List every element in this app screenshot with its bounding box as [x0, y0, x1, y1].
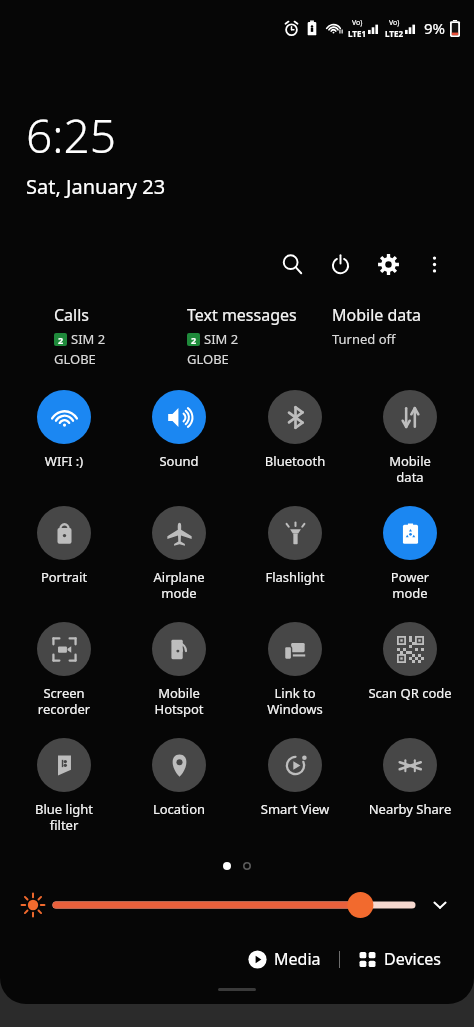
staticText: Sound: [127, 452, 231, 470]
staticText: Flashlight: [243, 568, 347, 586]
staticText: SIM 2: [204, 330, 239, 348]
staticText: Bluetooth: [243, 452, 347, 470]
staticText: Nearby Share: [358, 800, 462, 818]
staticText: Media: [274, 948, 321, 970]
button[interactable]: Text messages: [187, 304, 332, 368]
staticText: GLOBE: [187, 350, 229, 368]
button[interactable]: Mobile data: [332, 304, 464, 348]
button[interactable]: Search: [272, 244, 312, 284]
staticText: WIFI :): [12, 452, 116, 470]
button[interactable]: Portrait: [12, 506, 116, 586]
staticText: LTE2: [385, 28, 403, 39]
staticText: GLOBE: [54, 350, 96, 368]
button[interactable]: More options: [414, 244, 454, 284]
button[interactable]: Expand brightness settings: [420, 885, 460, 925]
staticText: 6:25: [26, 104, 117, 167]
staticText: Mobile Hotspot: [127, 684, 231, 717]
button[interactable]: Blue light filter: [12, 738, 116, 833]
button[interactable]: Devices: [352, 942, 448, 976]
button[interactable]: Power: [320, 244, 360, 284]
button[interactable]: Sound: [127, 390, 231, 470]
button[interactable]: Flashlight: [243, 506, 347, 586]
button[interactable]: Nearby Share: [358, 738, 462, 818]
staticText: Vo): [352, 18, 363, 28]
button[interactable]: Mobile Hotspot: [127, 622, 231, 717]
staticText: Screen recorder: [12, 684, 116, 717]
button[interactable]: Screen recorder: [12, 622, 116, 717]
button[interactable]: Scan QR code: [358, 622, 462, 702]
button[interactable]: Calls: [54, 304, 187, 368]
button[interactable]: Bluetooth: [243, 390, 347, 470]
button[interactable]: Airplane mode: [127, 506, 231, 601]
staticText: Location: [127, 800, 231, 818]
button[interactable]: Settings: [368, 244, 408, 284]
staticText: Sat, January 23: [26, 173, 166, 200]
staticText: Link to Windows: [243, 684, 347, 717]
staticText: LTE1: [348, 28, 366, 39]
button[interactable]: Link to Windows: [243, 622, 347, 717]
staticText: Smart View: [243, 800, 347, 818]
button[interactable]: WIFI :): [12, 390, 116, 470]
staticText: Vo): [389, 18, 400, 28]
button[interactable]: Location: [127, 738, 231, 818]
button[interactable]: Media: [242, 942, 327, 976]
staticText: Text messages: [187, 304, 297, 326]
staticText: 9%: [424, 18, 446, 38]
button[interactable]: Brightness: [56, 888, 412, 922]
staticText: Mobile data: [358, 452, 462, 485]
staticText: Scan QR code: [358, 684, 462, 702]
staticText: Calls: [54, 304, 90, 326]
staticText: Blue light filter: [12, 800, 116, 833]
button[interactable]: Mobile data: [358, 390, 462, 485]
staticText: Power mode: [358, 568, 462, 601]
button[interactable]: Smart View: [243, 738, 347, 818]
staticText: 2: [58, 334, 64, 346]
staticText: SIM 2: [71, 330, 106, 348]
staticText: Portrait: [12, 568, 116, 586]
staticText: Mobile data: [332, 304, 422, 326]
button[interactable]: Power mode: [358, 506, 462, 601]
staticText: Devices: [384, 948, 442, 970]
staticText: Turned off: [332, 330, 396, 348]
staticText: 2: [191, 334, 197, 346]
staticText: Airplane mode: [127, 568, 231, 601]
